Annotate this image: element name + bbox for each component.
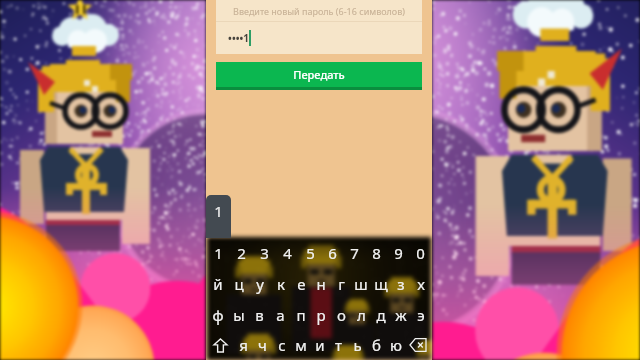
button[interactable]: 1 bbox=[206, 195, 231, 238]
button[interactable]: а bbox=[270, 299, 291, 330]
button[interactable]: ф bbox=[207, 299, 228, 330]
staticText: з bbox=[397, 274, 405, 294]
staticText: к bbox=[277, 274, 285, 294]
staticText: т bbox=[335, 335, 342, 355]
button[interactable]: о bbox=[331, 299, 351, 330]
button[interactable]: у bbox=[249, 268, 270, 299]
button[interactable]: ц bbox=[228, 268, 249, 299]
button[interactable]: ж bbox=[391, 299, 411, 330]
button[interactable]: ю bbox=[386, 330, 405, 360]
staticText: и bbox=[315, 335, 325, 355]
button[interactable]: п bbox=[291, 299, 311, 330]
button[interactable]: Backspace bbox=[405, 330, 431, 360]
staticText: ю bbox=[390, 335, 402, 355]
button[interactable]: ш bbox=[351, 268, 371, 299]
button[interactable]: т bbox=[329, 330, 348, 360]
button[interactable]: х bbox=[411, 268, 431, 299]
staticText: 9 bbox=[394, 243, 403, 263]
staticText: 2 bbox=[237, 243, 246, 263]
button[interactable]: б bbox=[367, 330, 386, 360]
button[interactable]: ы bbox=[228, 299, 249, 330]
button[interactable]: ь bbox=[348, 330, 367, 360]
button[interactable]: Shift bbox=[207, 330, 233, 360]
button[interactable]: и bbox=[310, 330, 329, 360]
staticText: е bbox=[297, 274, 306, 294]
staticText: й bbox=[213, 274, 223, 294]
staticText: л bbox=[357, 305, 366, 325]
staticText: 5 bbox=[306, 243, 315, 263]
staticText: а bbox=[276, 305, 285, 325]
button[interactable]: в bbox=[249, 299, 270, 330]
staticText: 1 bbox=[214, 243, 223, 263]
staticText: 6 bbox=[328, 243, 337, 263]
staticText: ••••1 bbox=[228, 31, 249, 45]
staticText: 3 bbox=[260, 243, 269, 263]
button[interactable]: н bbox=[311, 268, 331, 299]
staticText: п bbox=[296, 305, 306, 325]
staticText: г bbox=[338, 274, 345, 294]
staticText: д bbox=[376, 305, 386, 325]
button[interactable]: Введите новый пароль (6-16 символов) bbox=[216, 0, 422, 54]
button[interactable]: 7 bbox=[343, 237, 365, 268]
staticText: ф bbox=[212, 305, 224, 325]
staticText: 8 bbox=[372, 243, 381, 263]
button[interactable]: ч bbox=[253, 330, 272, 360]
button[interactable]: с bbox=[272, 330, 291, 360]
staticText: ц bbox=[234, 274, 244, 294]
button[interactable]: щ bbox=[371, 268, 391, 299]
button[interactable]: Передать bbox=[216, 62, 422, 90]
staticText: 1 bbox=[214, 201, 223, 221]
button[interactable]: з bbox=[391, 268, 411, 299]
staticText: 7 bbox=[350, 243, 359, 263]
staticText: Введите новый пароль (6-16 символов) bbox=[233, 5, 405, 17]
staticText: у bbox=[256, 274, 264, 294]
staticText: в bbox=[255, 305, 264, 325]
staticText: с bbox=[278, 335, 286, 355]
button[interactable]: 5 bbox=[299, 237, 321, 268]
staticText: ч bbox=[258, 335, 267, 355]
staticText: 0 bbox=[416, 243, 425, 263]
button[interactable]: 2 bbox=[230, 237, 253, 268]
staticText: я bbox=[239, 335, 248, 355]
staticText: 4 bbox=[283, 243, 292, 263]
staticText: Передать bbox=[293, 67, 345, 82]
staticText: р bbox=[316, 305, 326, 325]
button[interactable]: к bbox=[270, 268, 291, 299]
button[interactable]: е bbox=[291, 268, 311, 299]
button[interactable]: я bbox=[233, 330, 253, 360]
button[interactable]: 1 bbox=[207, 237, 230, 268]
staticText: б bbox=[372, 335, 381, 355]
button[interactable]: э bbox=[411, 299, 431, 330]
staticText: щ bbox=[374, 274, 388, 294]
staticText: э bbox=[417, 305, 425, 325]
staticText: н bbox=[316, 274, 326, 294]
button[interactable]: 6 bbox=[321, 237, 343, 268]
button[interactable]: 3 bbox=[253, 237, 276, 268]
staticText: ж bbox=[395, 305, 407, 325]
button[interactable]: й bbox=[207, 268, 228, 299]
button[interactable]: л bbox=[351, 299, 371, 330]
button[interactable]: 8 bbox=[365, 237, 387, 268]
staticText: ы bbox=[233, 305, 245, 325]
staticText: х bbox=[417, 274, 425, 294]
button[interactable]: 0 bbox=[409, 237, 431, 268]
button[interactable]: 9 bbox=[387, 237, 409, 268]
staticText: ш bbox=[354, 274, 368, 294]
staticText: м bbox=[295, 335, 307, 355]
button[interactable]: г bbox=[331, 268, 351, 299]
button[interactable]: р bbox=[311, 299, 331, 330]
staticText: ь bbox=[353, 335, 362, 355]
button[interactable]: м bbox=[291, 330, 310, 360]
button[interactable]: 4 bbox=[276, 237, 299, 268]
button[interactable]: д bbox=[371, 299, 391, 330]
staticText: о bbox=[337, 305, 346, 325]
